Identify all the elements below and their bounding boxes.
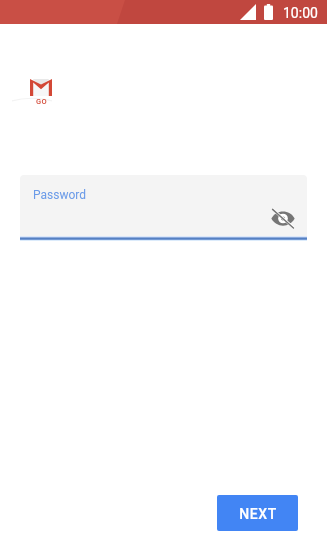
- staticText: Password: [33, 188, 87, 202]
- button[interactable]: Password: [20, 175, 307, 241]
- staticText: 10:00: [283, 5, 318, 21]
- button[interactable]: NEXT: [217, 495, 298, 531]
- staticText: NEXT: [239, 506, 277, 522]
- button[interactable]: Toggle password visibility: [271, 206, 295, 230]
- staticText: GO: [36, 97, 48, 106]
